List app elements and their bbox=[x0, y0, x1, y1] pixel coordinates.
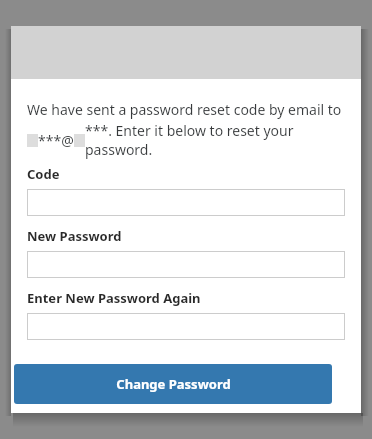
staticText: ***. Enter it below to reset your passwo… bbox=[85, 121, 345, 159]
staticText: Code bbox=[27, 165, 60, 183]
staticText: New Password bbox=[27, 227, 122, 245]
staticText: We have sent a password reset code by em… bbox=[27, 100, 342, 119]
button[interactable]: Enter New Password Again bbox=[27, 313, 345, 340]
button[interactable]: New Password bbox=[27, 251, 345, 278]
staticText: Enter New Password Again bbox=[27, 289, 201, 307]
button[interactable]: Change Password bbox=[14, 364, 332, 404]
staticText: Change Password bbox=[116, 375, 231, 393]
staticText: ***@ bbox=[38, 131, 74, 150]
button[interactable]: Code bbox=[27, 189, 345, 216]
